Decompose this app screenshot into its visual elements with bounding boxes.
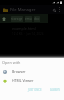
button[interactable]: More options: [57, 7, 62, 12]
staticText: emulated: [25, 17, 32, 21]
button[interactable]: storage: [11, 16, 23, 22]
staticText: HTML Viewer: [12, 78, 34, 83]
staticText: Open with: [2, 60, 21, 65]
button[interactable]: example.html: [0, 26, 64, 36]
staticText: example.html: [12, 26, 36, 31]
button[interactable]: Home: [0, 15, 7, 22]
button[interactable]: docs: [34, 16, 40, 22]
button[interactable]: emulated: [25, 16, 32, 22]
button[interactable]: JUST ONCE: [27, 87, 43, 93]
staticText: JUST ONCE: [28, 88, 42, 92]
button[interactable]: ALWAYS: [49, 87, 61, 93]
staticText: ALWAYS: [50, 88, 60, 92]
button[interactable]: Search: [51, 7, 57, 13]
staticText: Browser: [12, 69, 26, 74]
button[interactable]: HTML Viewer: [0, 76, 64, 85]
staticText: docs: [34, 17, 40, 21]
staticText: storage: [11, 17, 23, 21]
staticText: File Manager: [10, 7, 36, 13]
button[interactable]: Browser: [0, 67, 64, 76]
